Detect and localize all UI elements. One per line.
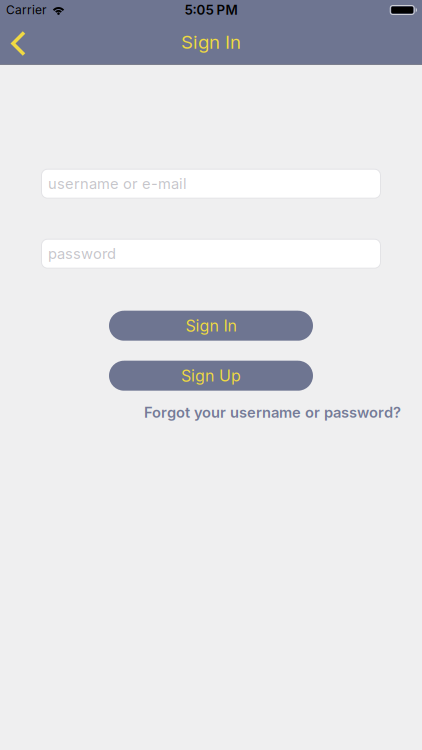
staticText: Carrier bbox=[6, 3, 47, 17]
staticText: 5:05 PM bbox=[184, 2, 237, 18]
staticText: Forgot your username or password? bbox=[144, 404, 401, 421]
button[interactable]: Sign Up bbox=[109, 361, 313, 391]
button[interactable]: Forgot your username or password? bbox=[144, 404, 401, 421]
secureTextField[interactable]: password bbox=[41, 240, 381, 267]
textField[interactable]: username or e-mail bbox=[41, 170, 381, 197]
staticText: Sign In bbox=[181, 31, 241, 53]
button[interactable]: Sign In bbox=[109, 311, 313, 341]
staticText: username or e-mail bbox=[41, 170, 246, 197]
staticText: password bbox=[48, 245, 116, 262]
staticText: password bbox=[41, 240, 145, 267]
staticText: Sign In bbox=[185, 316, 236, 335]
staticText: username or e-mail bbox=[48, 175, 187, 192]
button[interactable]: Back bbox=[0, 20, 40, 64]
staticText: Sign Up bbox=[181, 366, 241, 385]
